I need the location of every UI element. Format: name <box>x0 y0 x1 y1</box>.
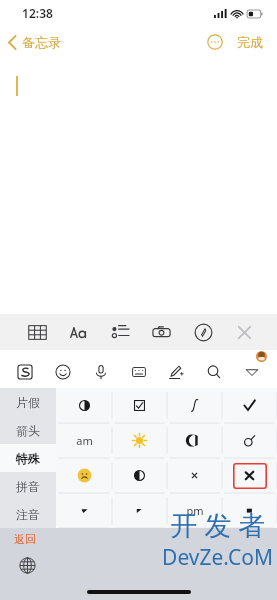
staticText: 拼音 <box>16 479 40 494</box>
staticText: 备忘录 <box>22 34 61 50</box>
button[interactable]: Symbol <box>167 388 222 423</box>
button[interactable]: Search <box>201 359 227 385</box>
staticText: 完成 <box>237 34 263 50</box>
staticText: 特殊 <box>16 451 40 466</box>
button[interactable]: Switch language <box>14 552 40 578</box>
button[interactable]: Hide keyboard <box>239 359 265 385</box>
button[interactable] <box>0 58 277 314</box>
button[interactable]: 返回 <box>10 530 40 548</box>
button[interactable]: 特殊 <box>0 444 56 472</box>
button[interactable]: 片假 <box>0 388 56 416</box>
button[interactable]: Symbol <box>112 493 167 528</box>
button[interactable]: Symbol <box>112 458 167 493</box>
button[interactable]: Symbol <box>167 458 222 493</box>
button[interactable]: 注音 <box>0 500 56 528</box>
button[interactable]: Symbol <box>56 493 112 528</box>
staticText: 箭头 <box>16 423 40 438</box>
staticText: am <box>76 433 93 448</box>
button[interactable]: Voice input <box>88 359 114 385</box>
button[interactable]: 完成 <box>233 30 267 54</box>
button[interactable]: Symbol <box>56 423 112 458</box>
button[interactable]: Keyboard layout <box>126 359 152 385</box>
button[interactable]: Symbol <box>167 493 222 528</box>
button[interactable]: Camera <box>146 317 176 347</box>
staticText: 片假 <box>16 395 40 410</box>
button[interactable]: 拼音 <box>0 472 56 500</box>
button[interactable]: Symbol <box>167 423 222 458</box>
button[interactable]: Symbol <box>112 423 167 458</box>
button[interactable]: Markup <box>188 317 218 347</box>
button[interactable]: More options <box>202 29 228 55</box>
staticText: 12:38 <box>22 5 53 21</box>
button[interactable]: Close keyboard <box>229 317 259 347</box>
button[interactable]: Text format <box>63 317 93 347</box>
button[interactable]: Table <box>22 317 52 347</box>
button[interactable]: Symbol <box>56 388 112 423</box>
button[interactable]: Profile <box>256 351 267 362</box>
button[interactable]: Symbol <box>222 423 277 458</box>
button[interactable]: Symbol <box>222 458 277 493</box>
button[interactable]: Checklist <box>105 317 135 347</box>
button[interactable]: Symbol <box>56 458 112 493</box>
staticText: DevZe.CoM <box>162 543 273 572</box>
button[interactable]: Symbol <box>222 388 277 423</box>
staticText: 返回 <box>14 532 36 546</box>
button[interactable]: Sogou logo <box>12 359 38 385</box>
button[interactable]: Symbol <box>112 388 167 423</box>
button[interactable]: 箭头 <box>0 416 56 444</box>
staticText: 注音 <box>16 507 40 522</box>
button[interactable]: Handwriting <box>163 359 189 385</box>
button[interactable]: Symbol <box>222 493 277 528</box>
button[interactable]: 备忘录 <box>0 30 69 54</box>
button[interactable]: Emoji <box>50 359 76 385</box>
staticText: 开 发 者 <box>170 506 266 543</box>
staticText: pm <box>186 503 204 518</box>
